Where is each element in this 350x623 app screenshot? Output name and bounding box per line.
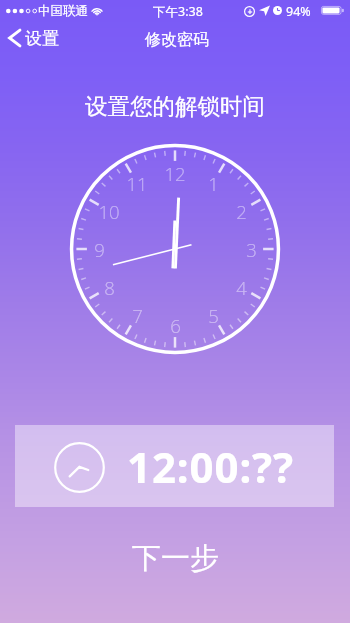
staticText: 94%	[286, 3, 311, 20]
staticText: 11	[126, 171, 148, 196]
staticText: 8	[104, 275, 115, 300]
staticText: 12:00:??	[127, 438, 294, 495]
staticText: 中国联通	[38, 3, 88, 19]
staticText: 下一步	[132, 540, 219, 577]
other: Clock	[54, 442, 105, 493]
staticText: 3	[246, 237, 257, 262]
staticText: 7	[132, 303, 143, 328]
staticText: 设置	[25, 28, 59, 49]
button[interactable]: 下一步	[0, 534, 350, 582]
staticText: 1	[208, 171, 219, 196]
staticText: 2	[236, 199, 247, 224]
staticText: 12	[164, 161, 186, 186]
staticText: 设置您的解锁时间	[0, 92, 350, 120]
staticText: 9	[94, 237, 105, 262]
staticText: 10	[98, 199, 120, 224]
button[interactable]: Clock	[15, 425, 334, 507]
staticText: 5	[208, 303, 219, 328]
staticText: 6	[170, 313, 181, 338]
button[interactable]: 设置	[2, 24, 69, 52]
staticText: 4	[236, 275, 247, 300]
staticText: 修改密码	[145, 30, 209, 50]
staticText: 下午3:38	[153, 3, 203, 20]
